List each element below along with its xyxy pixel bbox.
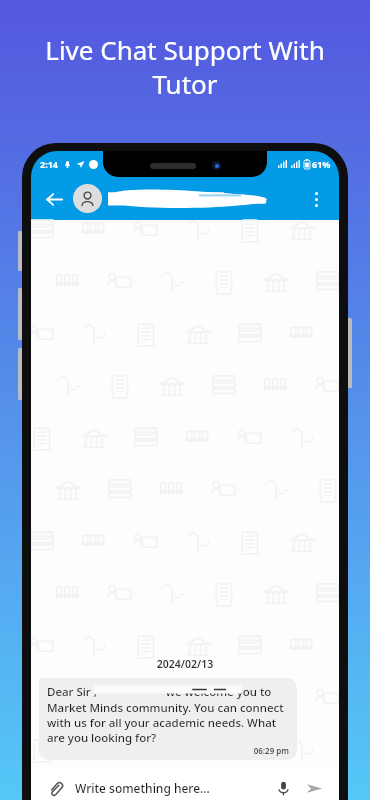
button[interactable]: Attach file (43, 776, 67, 800)
button[interactable]: Write something here... (75, 780, 271, 796)
button[interactable]: Dear Sir , we welcome you to Market Mind… (39, 678, 297, 760)
staticText: 2:14 (40, 158, 58, 170)
button[interactable]: More options (301, 184, 331, 214)
staticText: 61% (312, 158, 331, 170)
staticText: 06:29 pm (47, 745, 289, 756)
staticText: Dear Sir , we welcome you to Market Mind… (47, 684, 289, 745)
button[interactable]: Voice message (271, 776, 295, 800)
button[interactable] (108, 187, 301, 211)
staticText: 2024/02/13 (39, 657, 331, 671)
button[interactable]: Profile (73, 184, 102, 213)
staticText: Live Chat Support With Tutor (24, 32, 346, 102)
button[interactable]: Back (39, 184, 69, 214)
button[interactable]: Send (301, 775, 327, 800)
